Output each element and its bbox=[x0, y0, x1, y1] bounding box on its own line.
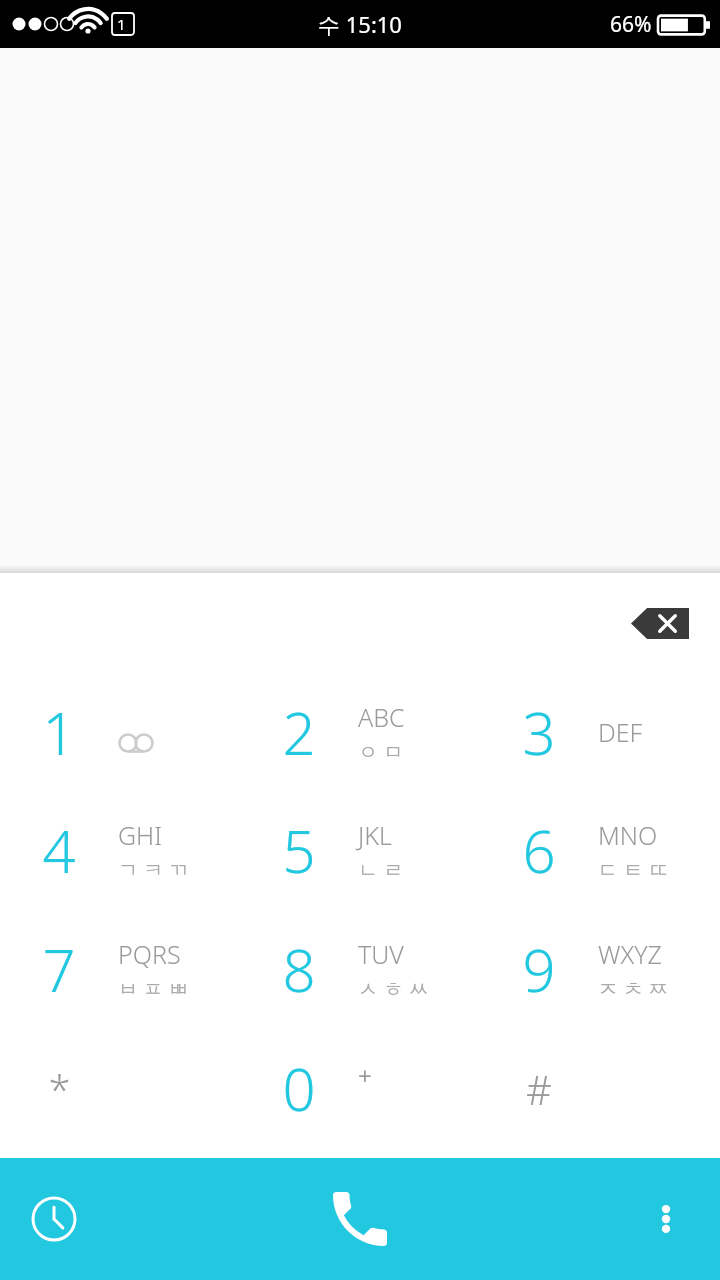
button[interactable]: # bbox=[480, 1029, 720, 1148]
staticText: ㅂ ㅍ ㅃ bbox=[118, 975, 189, 1002]
button[interactable]: 8 bbox=[240, 910, 480, 1029]
staticText: 2 bbox=[282, 693, 316, 772]
staticText: 0 bbox=[282, 1049, 316, 1128]
staticText: ㅇ ㅁ bbox=[358, 738, 404, 765]
button[interactable]: Call bbox=[295, 1164, 425, 1274]
staticText: ㄷ ㅌ ㄸ bbox=[598, 856, 669, 883]
staticText: 5 bbox=[282, 811, 316, 890]
button[interactable]: More options bbox=[626, 1179, 706, 1259]
staticText: ㄱ ㅋ ㄲ bbox=[118, 856, 189, 883]
staticText: 6 bbox=[522, 811, 556, 890]
button[interactable]: 3 bbox=[480, 673, 720, 791]
staticText: ABC bbox=[358, 700, 405, 734]
button[interactable]: 0 bbox=[240, 1029, 480, 1148]
button[interactable]: 5 bbox=[240, 791, 480, 910]
staticText: * bbox=[48, 1062, 71, 1116]
staticText: WXYZ bbox=[598, 937, 662, 971]
staticText: + bbox=[358, 1059, 372, 1092]
button[interactable]: Backspace bbox=[618, 592, 702, 654]
staticText: 1 bbox=[117, 14, 126, 34]
button[interactable]: 9 bbox=[480, 910, 720, 1029]
staticText: ㅅ ㅎ ㅆ bbox=[358, 975, 429, 1002]
button[interactable]: Call history bbox=[14, 1179, 94, 1259]
button[interactable]: 6 bbox=[480, 791, 720, 910]
staticText: 7 bbox=[42, 930, 76, 1009]
button[interactable]: 7 bbox=[0, 910, 240, 1029]
staticText: JKL bbox=[358, 818, 392, 852]
staticText: 1 bbox=[42, 693, 76, 772]
button[interactable]: 1 bbox=[0, 673, 240, 791]
staticText: 9 bbox=[522, 930, 556, 1009]
button[interactable]: * bbox=[0, 1029, 240, 1148]
staticText: 4 bbox=[42, 811, 76, 890]
staticText: 66% bbox=[610, 10, 652, 39]
staticText: PQRS bbox=[118, 937, 181, 971]
button[interactable]: 2 bbox=[240, 673, 480, 791]
staticText: 3 bbox=[522, 693, 556, 772]
staticText: TUV bbox=[358, 937, 404, 971]
staticText: 수 15:10 bbox=[318, 9, 402, 39]
staticText: ㅈ ㅊ ㅉ bbox=[598, 975, 669, 1002]
staticText: 8 bbox=[282, 930, 316, 1009]
staticText: MNO bbox=[598, 818, 658, 852]
button[interactable]: 4 bbox=[0, 791, 240, 910]
staticText: DEF bbox=[598, 715, 643, 749]
staticText: ㄴ ㄹ bbox=[358, 856, 404, 883]
staticText: # bbox=[526, 1062, 552, 1116]
staticText: GHI bbox=[118, 818, 162, 852]
